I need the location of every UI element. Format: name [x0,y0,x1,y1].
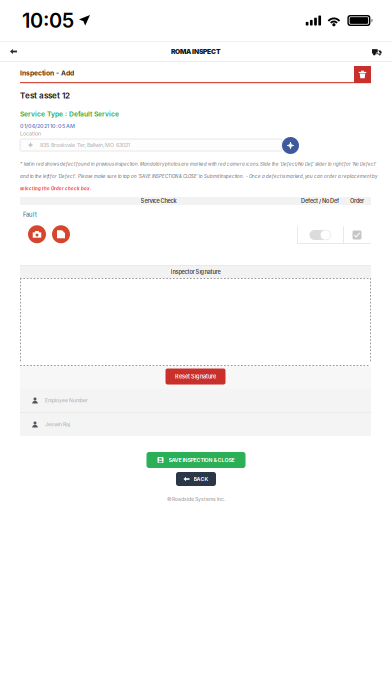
staticText: ROMA INSPECT [171,47,221,56]
button[interactable]: Back [0,42,34,61]
staticText: selecting the Order check box. [20,186,91,191]
staticText: Order [350,198,364,204]
button[interactable]: Employee Number [20,389,371,412]
staticText: Jeswin Raj [45,421,70,427]
staticText: 10:05 [22,8,74,33]
button[interactable]: Jeswin Raj [20,413,371,436]
staticText: Employee Number [45,397,88,403]
staticText: Reset Signature [175,373,216,380]
button[interactable]: Add note [52,225,70,243]
staticText: Service Check [140,198,176,204]
button[interactable]: Take photo [28,225,46,243]
staticText: Location [20,130,41,137]
button[interactable]: Use current location [282,137,299,154]
staticText: SAVE INSPECTION & CLOSE [168,457,234,463]
staticText: Service Type : Default Service [20,110,119,118]
staticText: BACK [193,476,208,482]
staticText: and to the left for 'Defect'. Please mak… [20,174,377,179]
button[interactable]: SAVE INSPECTION & CLOSE [146,452,245,468]
staticText: Test asset 12 [20,91,70,100]
staticText: Inspection - Add [20,69,74,77]
staticText: ©Roadside Systems Inc. [167,496,225,502]
staticText: 01/06/2021 10:05 AM [20,123,75,129]
button[interactable]: BACK [176,472,216,486]
staticText: 835 Brookvale Ter,Ballwin,MO 63021 [40,142,130,148]
staticText: Inspector Signature [170,269,220,275]
button[interactable]: Delete inspection [354,66,371,83]
button[interactable]: Reset Signature [165,368,225,384]
staticText: * Text in red shows defect found in prev… [20,161,376,167]
staticText: Defect / No Def [301,198,339,204]
staticText: Fault [23,211,37,218]
button[interactable]: Vehicle [358,42,392,61]
